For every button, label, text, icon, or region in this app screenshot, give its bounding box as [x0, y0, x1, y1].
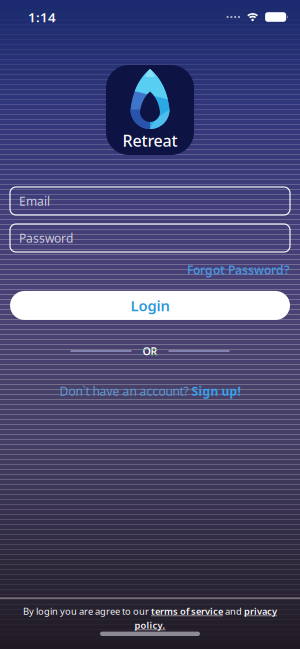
- button[interactable]: Email: [10, 187, 290, 215]
- button[interactable]: Forgot Password?: [187, 262, 290, 278]
- staticText: Forgot Password?: [187, 262, 290, 278]
- button[interactable]: By login you are agree to our terms of s…: [23, 607, 277, 630]
- staticText: 1:14: [28, 8, 56, 26]
- button[interactable]: Login: [10, 291, 290, 320]
- staticText: Sign up!: [191, 383, 240, 399]
- button[interactable]: Don`t have an account?: [59, 383, 240, 399]
- staticText: Email: [19, 193, 50, 209]
- staticText: Don`t have an account?: [59, 383, 188, 399]
- staticText: Password: [19, 230, 73, 246]
- button[interactable]: Password: [10, 224, 290, 252]
- staticText: policy.: [134, 619, 165, 631]
- staticText: OR: [142, 344, 157, 358]
- staticText: By login you are agree to our terms of s…: [23, 605, 277, 617]
- staticText: Login: [130, 296, 169, 315]
- staticText: Retreat: [122, 130, 177, 151]
